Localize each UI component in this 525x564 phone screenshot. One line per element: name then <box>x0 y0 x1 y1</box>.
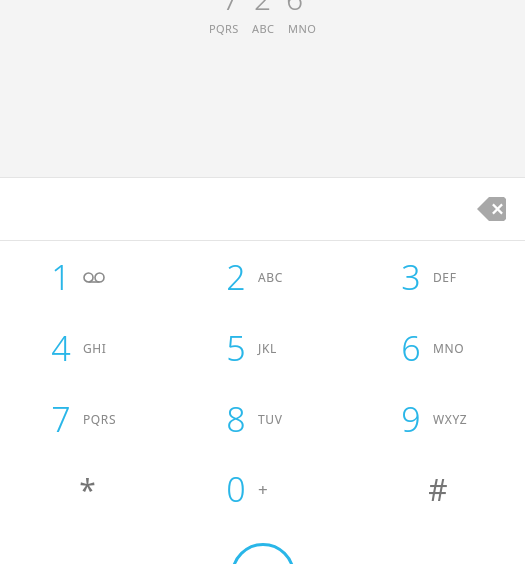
staticText: GHI <box>83 340 107 356</box>
staticText: 4 <box>51 325 71 371</box>
staticText: 7 <box>222 0 240 19</box>
staticText: 8 <box>226 396 246 442</box>
staticText: MNO <box>433 340 465 356</box>
staticText: PQRS <box>209 21 239 36</box>
staticText: WXYZ <box>433 411 468 427</box>
staticText: # <box>428 469 448 510</box>
staticText: TUV <box>258 411 283 427</box>
button[interactable]: 8 <box>175 383 350 454</box>
button[interactable]: Backspace <box>463 185 519 233</box>
staticText: 2 <box>226 254 246 300</box>
staticText: ABC <box>252 21 275 36</box>
staticText: * <box>79 469 96 510</box>
button[interactable]: 2 <box>175 241 350 312</box>
button[interactable]: 3 <box>350 241 525 312</box>
staticText: 0 <box>226 466 246 512</box>
staticText: 3 <box>401 254 421 300</box>
button[interactable]: 7 <box>0 383 175 454</box>
staticText: 9 <box>401 396 421 442</box>
staticText: 5 <box>226 325 246 371</box>
button[interactable]: 4 <box>0 312 175 383</box>
staticText: 6 <box>401 325 421 371</box>
staticText: PQRS <box>83 411 117 427</box>
staticText: MNO <box>288 21 317 36</box>
button[interactable]: 5 <box>175 312 350 383</box>
button[interactable]: 6 <box>350 312 525 383</box>
staticText: 7 <box>51 396 71 442</box>
button[interactable]: 1 <box>0 241 175 312</box>
staticText: DEF <box>433 269 457 285</box>
staticText: 1 <box>51 254 71 300</box>
button[interactable]: 9 <box>350 383 525 454</box>
staticText: + <box>258 478 268 501</box>
staticText: JKL <box>258 340 277 356</box>
staticText: ABC <box>258 269 283 285</box>
staticText: 2 <box>254 0 272 19</box>
button[interactable]: 0 <box>175 454 350 524</box>
button[interactable]: Call <box>231 543 295 564</box>
button[interactable]: # <box>350 454 525 524</box>
staticText: 6 <box>286 0 304 19</box>
button[interactable]: * <box>0 454 175 524</box>
